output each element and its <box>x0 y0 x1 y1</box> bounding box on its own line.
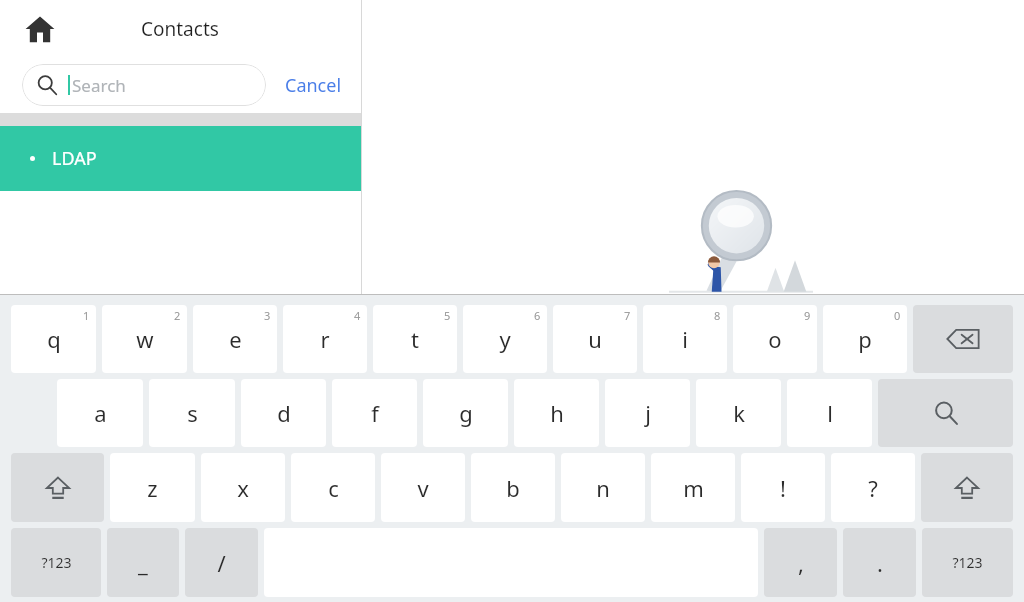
button[interactable]: i <box>643 305 727 373</box>
button[interactable]: Shift <box>921 453 1013 522</box>
staticText: r <box>320 324 330 354</box>
staticText: t <box>411 324 419 354</box>
button[interactable]: m <box>651 453 735 522</box>
button[interactable]: y <box>463 305 547 373</box>
staticText: 7 <box>624 308 631 323</box>
staticText: ?123 <box>952 553 983 572</box>
button[interactable]: ? <box>831 453 915 522</box>
staticText: k <box>733 398 745 428</box>
button[interactable]: d <box>241 379 326 447</box>
button[interactable]: b <box>471 453 555 522</box>
button[interactable]: p <box>823 305 907 373</box>
staticText: s <box>187 398 198 428</box>
staticText: x <box>237 473 249 503</box>
button[interactable]: c <box>291 453 375 522</box>
staticText: y <box>499 324 511 354</box>
staticText: m <box>683 473 704 503</box>
staticText: 4 <box>354 308 361 323</box>
button[interactable]: ?123 <box>922 528 1013 597</box>
staticText: _ <box>138 548 148 578</box>
staticText: p <box>858 324 872 354</box>
staticText: . <box>877 548 883 578</box>
staticText: 0 <box>894 308 901 323</box>
staticText: Cancel <box>285 73 342 98</box>
staticText: 8 <box>714 308 721 323</box>
staticText: h <box>550 398 564 428</box>
button[interactable]: j <box>605 379 690 447</box>
button[interactable]: v <box>381 453 465 522</box>
staticText: 1 <box>83 308 90 323</box>
button[interactable]: q <box>11 305 96 373</box>
staticText: u <box>588 324 602 354</box>
button[interactable]: Cancel <box>285 73 342 98</box>
button[interactable]: _ <box>107 528 179 597</box>
staticText: LDAP <box>52 146 97 171</box>
button[interactable]: Home <box>16 5 64 53</box>
button[interactable]: x <box>201 453 285 522</box>
button[interactable]: Shift <box>11 453 104 522</box>
staticText: 6 <box>534 308 541 323</box>
button[interactable]: ! <box>741 453 825 522</box>
button[interactable]: r <box>283 305 367 373</box>
button[interactable]: l <box>787 379 872 447</box>
staticText: c <box>328 473 339 503</box>
staticText: 2 <box>174 308 181 323</box>
staticText: l <box>827 398 833 428</box>
staticText: e <box>229 324 242 354</box>
staticText: q <box>47 324 61 354</box>
button[interactable]: g <box>423 379 508 447</box>
staticText: i <box>682 324 688 354</box>
staticText: Search <box>72 74 126 97</box>
button[interactable]: o <box>733 305 817 373</box>
staticText: n <box>596 473 610 503</box>
staticText: / <box>217 548 226 578</box>
staticText: w <box>136 324 154 354</box>
staticText: o <box>768 324 782 354</box>
staticText: j <box>645 398 651 428</box>
staticText: ! <box>780 473 786 503</box>
button[interactable]: Search <box>878 379 1013 447</box>
staticText: z <box>147 473 158 503</box>
button[interactable]: . <box>843 528 916 597</box>
button[interactable]: z <box>110 453 195 522</box>
button[interactable]: n <box>561 453 645 522</box>
button[interactable]: h <box>514 379 599 447</box>
button[interactable]: a <box>57 379 143 447</box>
staticText: v <box>417 473 429 503</box>
staticText: b <box>506 473 520 503</box>
staticText: 3 <box>264 308 271 323</box>
button[interactable]: f <box>332 379 417 447</box>
staticText: Contacts <box>141 16 219 42</box>
button[interactable]: k <box>696 379 781 447</box>
staticText: g <box>459 398 473 428</box>
button[interactable]: s <box>149 379 235 447</box>
button[interactable]: u <box>553 305 637 373</box>
staticText: ?123 <box>41 553 72 572</box>
button[interactable]: Backspace <box>913 305 1013 373</box>
staticText: a <box>94 398 107 428</box>
staticText: d <box>277 398 291 428</box>
staticText: 5 <box>444 308 451 323</box>
button[interactable]: Search <box>22 64 266 106</box>
button[interactable]: e <box>193 305 277 373</box>
staticText: 9 <box>804 308 811 323</box>
button[interactable]: w <box>102 305 187 373</box>
staticText: f <box>371 398 379 428</box>
button[interactable]: LDAP <box>0 126 361 191</box>
button[interactable]: t <box>373 305 457 373</box>
staticText: ? <box>868 473 878 503</box>
button[interactable]: ?123 <box>11 528 101 597</box>
button[interactable]: , <box>764 528 837 597</box>
staticText: , <box>798 548 804 578</box>
button[interactable]: / <box>185 528 258 597</box>
